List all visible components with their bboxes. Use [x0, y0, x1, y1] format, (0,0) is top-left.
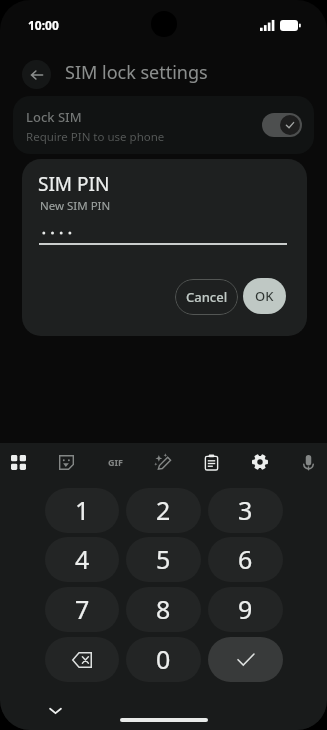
button[interactable]: 4 [45, 537, 119, 582]
button[interactable]: Back [22, 60, 51, 89]
staticText: 1 [75, 493, 90, 527]
staticText: 3 [238, 493, 253, 527]
staticText: SIM PIN [38, 171, 110, 197]
button[interactable]: GIF [99, 446, 131, 478]
button[interactable]: OK [243, 278, 286, 314]
staticText: 9 [238, 592, 253, 626]
staticText: GIF [108, 456, 123, 468]
staticText: 2 [156, 493, 171, 527]
button[interactable]: Voice input [292, 446, 324, 478]
staticText: Cancel [186, 288, 228, 306]
staticText: 6 [238, 542, 253, 576]
button[interactable]: 0 [126, 637, 201, 682]
button[interactable]: 9 [208, 587, 283, 632]
button[interactable]: Lock SIM [13, 96, 314, 154]
button[interactable]: 1 [45, 488, 119, 533]
button[interactable]: Lock SIM toggle [262, 113, 302, 137]
button[interactable]: Stickers [50, 446, 82, 478]
staticText: 7 [75, 592, 90, 626]
button[interactable]: Magic compose [147, 446, 179, 478]
button[interactable]: Cancel [175, 279, 238, 315]
button[interactable]: 3 [208, 488, 283, 533]
button[interactable]: 8 [126, 587, 201, 632]
staticText: 8 [156, 592, 171, 626]
button[interactable]: 7 [45, 587, 119, 632]
staticText: OK [255, 287, 274, 305]
button[interactable]: 5 [126, 537, 201, 582]
staticText: 5 [156, 542, 171, 576]
button[interactable]: Enter [208, 637, 283, 682]
staticText: 0 [156, 642, 171, 676]
staticText: 4 [75, 542, 90, 576]
staticText: New SIM PIN [40, 198, 111, 214]
button[interactable]: 6 [208, 537, 283, 582]
staticText: 10:00 [28, 17, 59, 33]
staticText: Lock SIM [26, 108, 82, 126]
button[interactable]: Apps [2, 446, 34, 478]
button[interactable]: Settings [244, 446, 276, 478]
button[interactable]: Delete [45, 637, 119, 682]
staticText: SIM lock settings [65, 60, 208, 85]
button[interactable]: Clipboard [195, 446, 227, 478]
staticText: Require PIN to use phone [26, 129, 165, 145]
button[interactable]: 2 [126, 488, 201, 533]
button[interactable]: Hide keyboard [43, 698, 67, 722]
